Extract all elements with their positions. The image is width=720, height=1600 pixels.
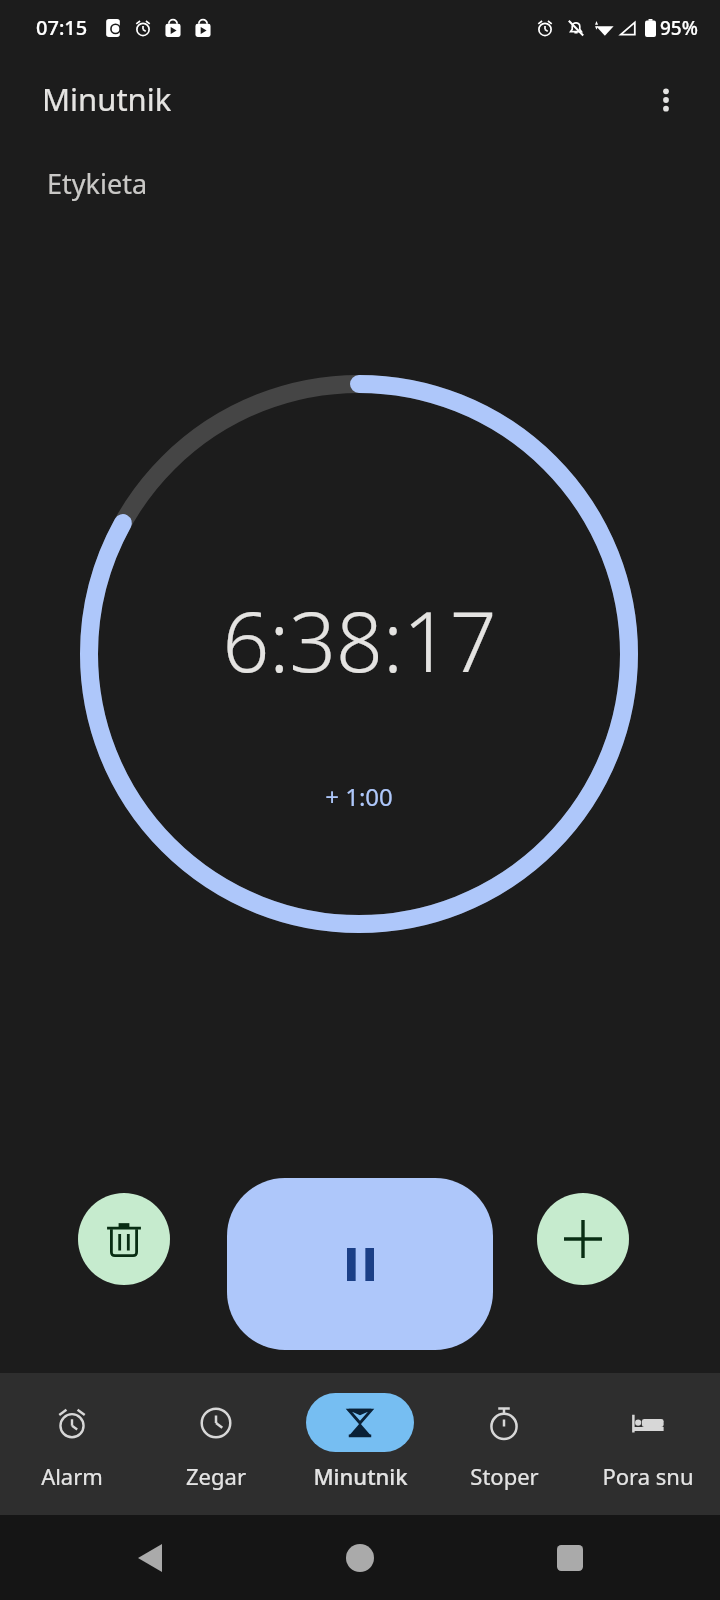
button[interactable]: Wstecz (122, 1530, 178, 1586)
button[interactable]: Ekran główny (332, 1530, 388, 1586)
button[interactable]: Minutnik (288, 1373, 432, 1515)
staticText: Stoper (470, 1461, 539, 1491)
staticText: Minutnik (42, 78, 172, 120)
staticText: 95% (660, 15, 698, 41)
staticText: Alarm (41, 1461, 103, 1491)
staticText: 07:15 (36, 14, 88, 41)
button[interactable]: Etykieta (0, 152, 720, 214)
staticText: Minutnik (313, 1461, 408, 1491)
staticText: Etykieta (47, 165, 148, 202)
button[interactable]: Ostatnie aplikacje (542, 1530, 598, 1586)
button[interactable]: Wstrzymaj (227, 1178, 493, 1350)
staticText: Zegar (186, 1461, 246, 1491)
button[interactable]: + 1:00 (313, 776, 405, 817)
staticText: 6:38:17 (222, 584, 497, 696)
button[interactable]: Stoper (432, 1373, 576, 1515)
button[interactable]: Alarm (0, 1373, 144, 1515)
button[interactable]: Dodaj minutę (537, 1193, 629, 1285)
button[interactable]: Zegar (144, 1373, 288, 1515)
staticText: + 1:00 (325, 780, 393, 813)
button[interactable]: Więcej opcji (638, 72, 694, 128)
button[interactable]: Pora snu (576, 1373, 720, 1515)
staticText: Pora snu (602, 1461, 694, 1491)
button[interactable]: Usuń (78, 1193, 170, 1285)
